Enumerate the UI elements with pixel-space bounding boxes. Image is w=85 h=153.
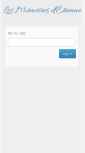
staticText: Log in <box>63 52 72 55</box>
staticText: Mot de passe <box>8 32 26 35</box>
staticText: Les Mémoires d'Étienne <box>3 4 81 17</box>
button[interactable]: Les Mémoires d'Étienne <box>2 0 81 24</box>
button[interactable]: Log in <box>59 49 76 58</box>
